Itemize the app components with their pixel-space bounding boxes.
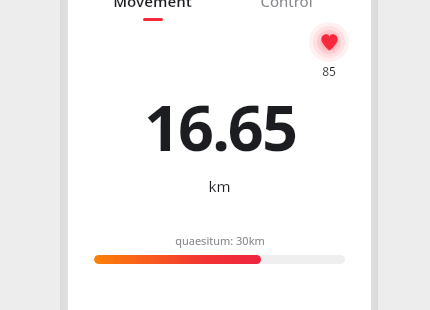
staticText: Control — [260, 0, 313, 11]
button[interactable]: Distance progress — [94, 255, 345, 264]
staticText: Movement — [113, 0, 192, 11]
staticText: quaesitum: 30km — [175, 233, 265, 248]
staticText: 85 — [322, 63, 336, 79]
staticText: km — [208, 176, 231, 196]
button[interactable]: Control — [219, 0, 353, 18]
button[interactable]: Movement — [86, 0, 219, 21]
staticText: 16.65 — [144, 84, 296, 170]
button[interactable]: Heart rate 85 bpm — [309, 22, 349, 79]
